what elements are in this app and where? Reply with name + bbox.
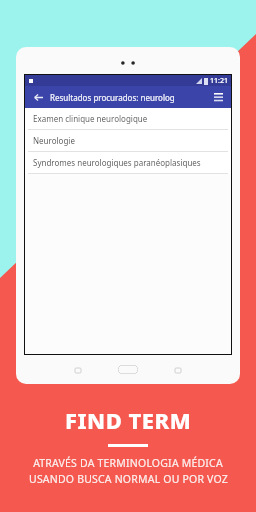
button[interactable]: Syndromes neurologiques paranéoplasiques: [25, 152, 231, 173]
button[interactable]: Neurologie: [25, 130, 231, 151]
button[interactable]: Back: [72, 364, 84, 376]
button[interactable]: Examen clinique neurologique: [25, 108, 231, 129]
staticText: Syndromes neurologiques paranéoplasiques: [33, 157, 201, 168]
button[interactable]: Filter: [211, 90, 225, 104]
staticText: Examen clinique neurologique: [33, 113, 148, 124]
button[interactable]: Home: [118, 365, 138, 374]
staticText: USANDO BUSCA NORMAL OU POR VOZ: [29, 472, 228, 486]
button[interactable]: Back: [31, 90, 45, 104]
staticText: FIND TERM: [65, 405, 192, 435]
staticText: Resultados procurados: neurolog: [50, 92, 175, 103]
staticText: ATRAVÉS DA TERMINOLOGIA MÉDICA: [33, 456, 223, 470]
staticText: Neurologie: [33, 135, 75, 146]
button[interactable]: Recents: [172, 364, 184, 376]
staticText: 11:21: [210, 76, 228, 86]
